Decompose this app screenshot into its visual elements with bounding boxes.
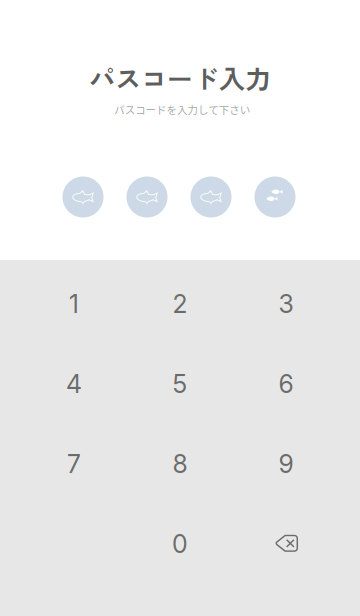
button[interactable]: 8 [127,424,233,504]
button[interactable]: 1 [21,264,127,344]
staticText: 1 [69,289,79,319]
staticText: 3 [278,289,293,319]
staticText: 0 [172,529,188,559]
button[interactable]: 5 [127,344,233,424]
button[interactable]: 0 [127,504,233,584]
staticText: パスコード入力 [89,59,271,96]
staticText: 7 [67,449,81,479]
button[interactable]: Delete [234,503,340,583]
staticText: 9 [278,449,293,479]
staticText: 6 [278,369,293,399]
button[interactable]: 7 [21,424,127,504]
button[interactable]: 9 [233,424,339,504]
staticText: 5 [172,369,187,399]
staticText: 8 [172,449,187,479]
staticText: 4 [66,369,82,399]
button[interactable]: 3 [233,264,339,344]
button[interactable]: 2 [127,264,233,344]
staticText: 2 [172,289,187,319]
button[interactable]: 6 [233,344,339,424]
button[interactable]: 4 [21,344,127,424]
staticText: パスコードを入力して下さい [114,102,250,117]
